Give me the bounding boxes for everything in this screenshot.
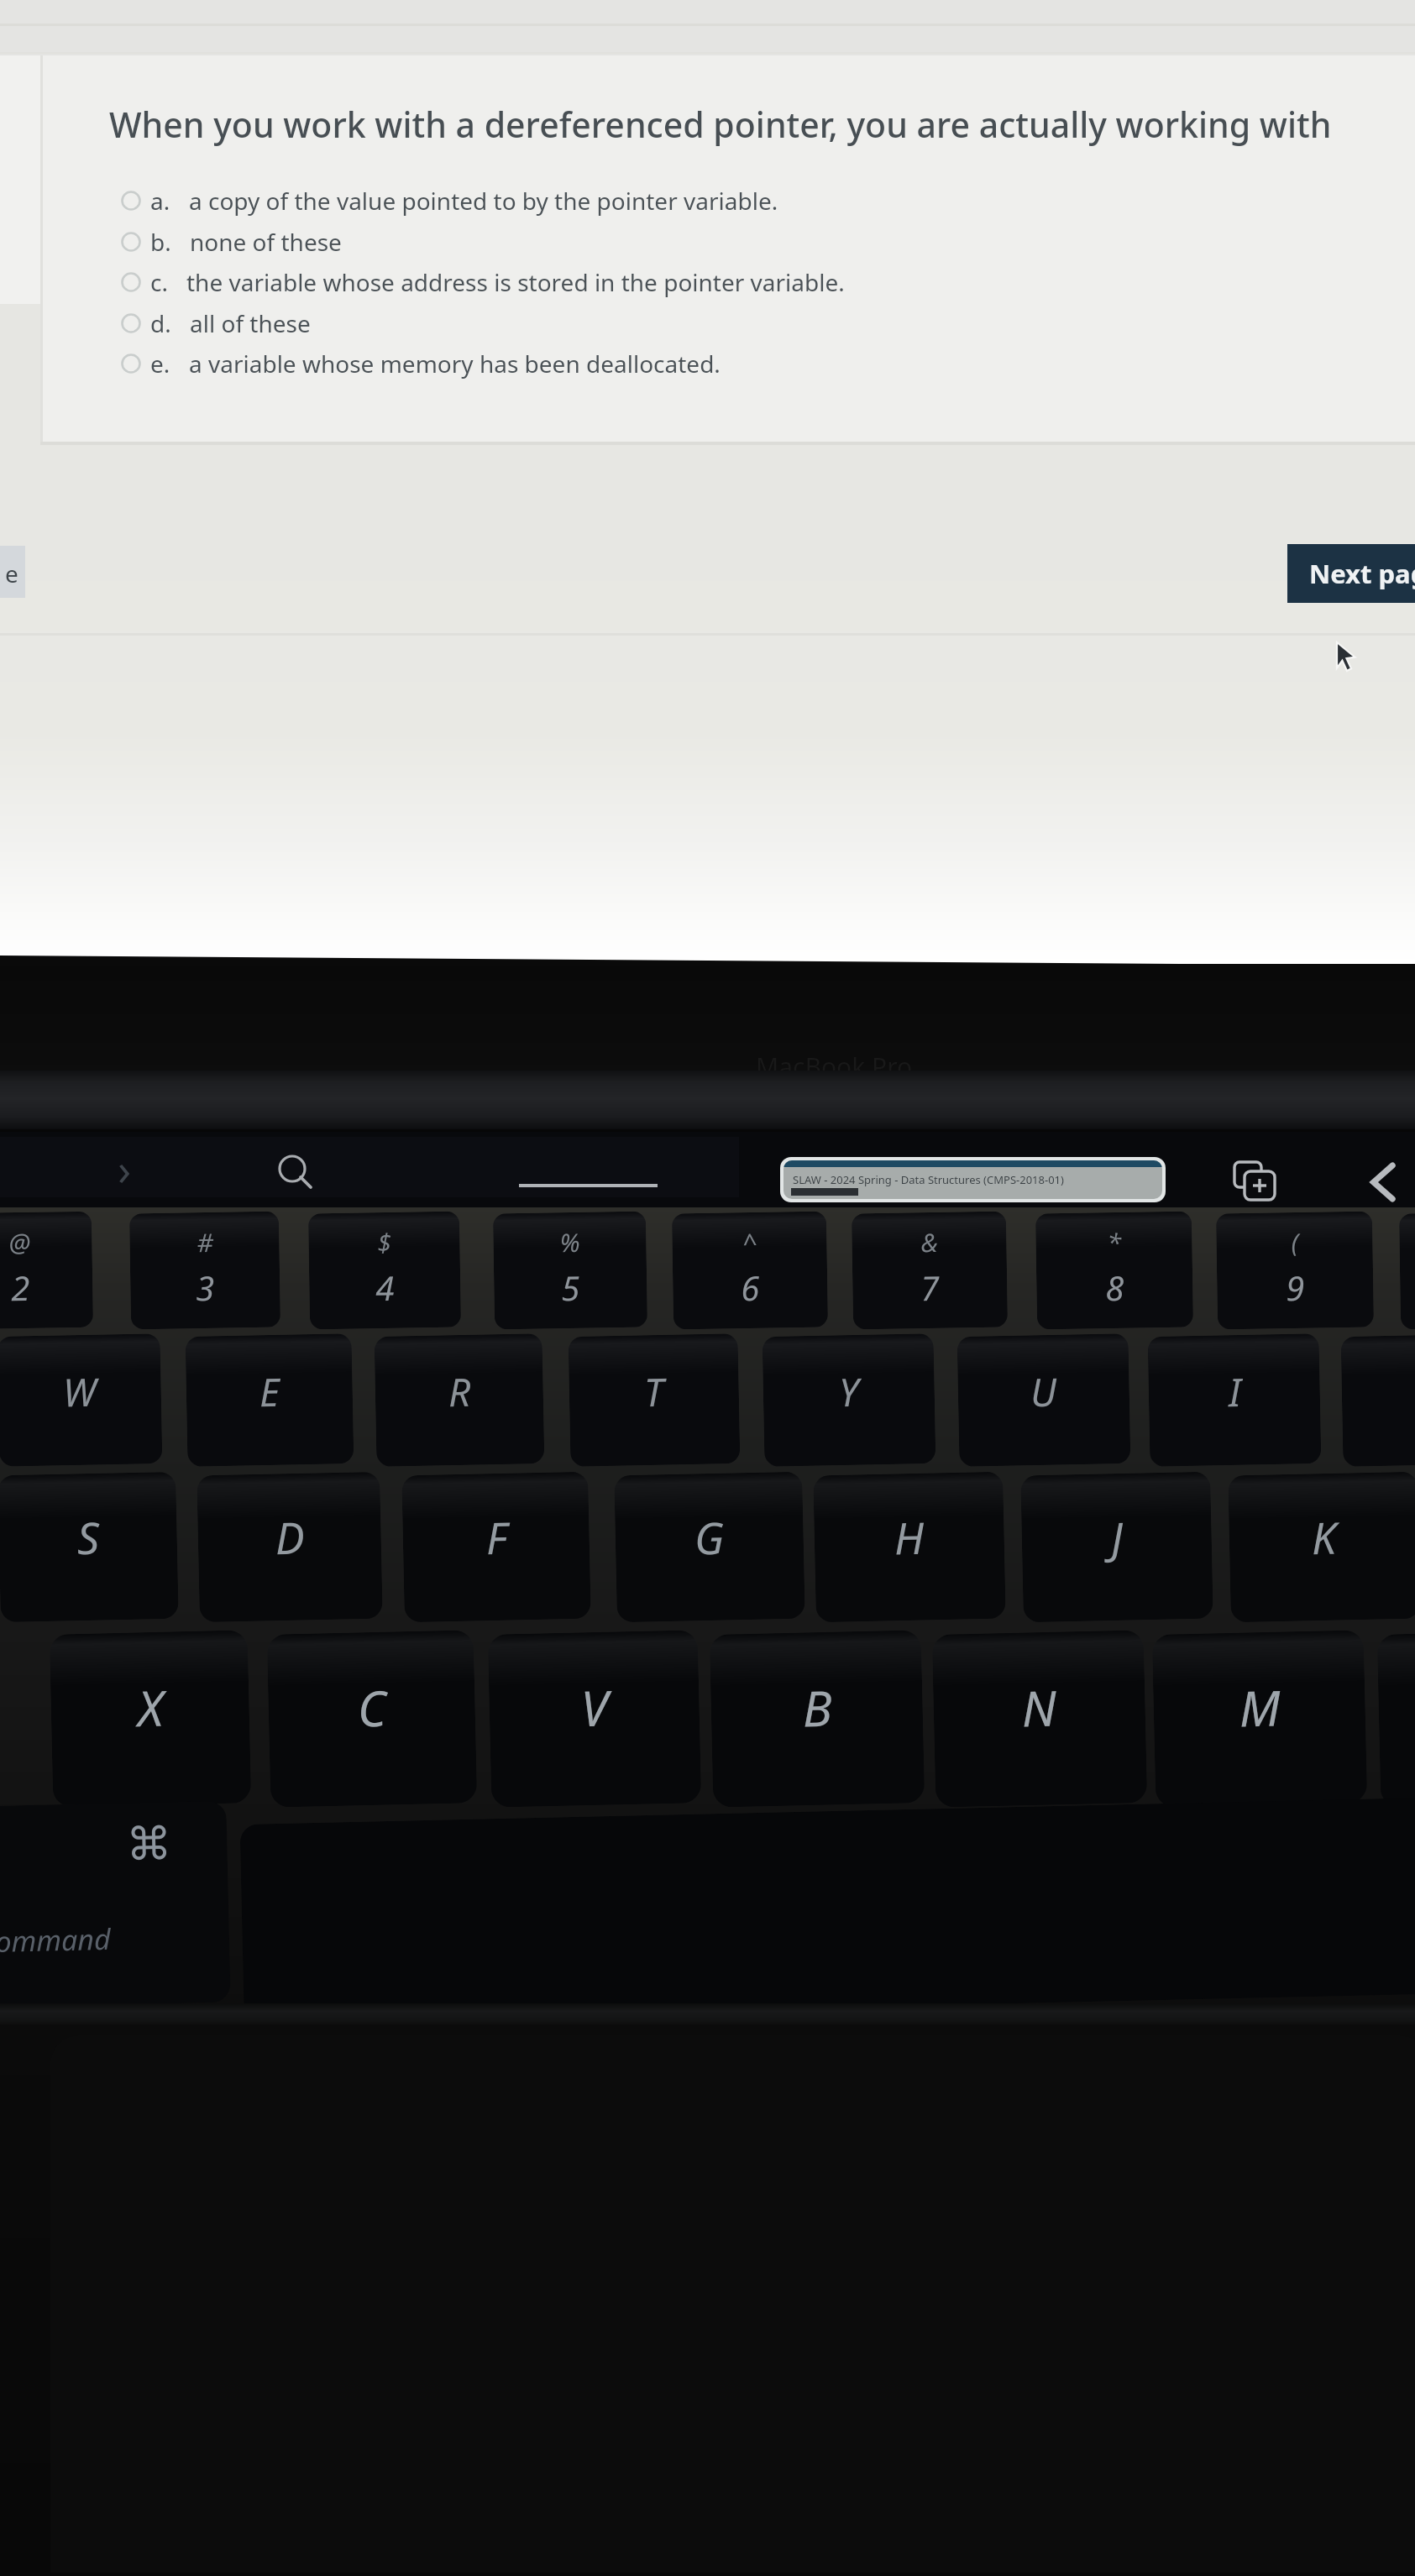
button[interactable]: Y	[762, 1333, 936, 1467]
staticText: command	[0, 1919, 111, 1961]
staticText: SLAW - 2024 Spring - Data Structures (CM…	[793, 1172, 1064, 1187]
button[interactable]: %	[493, 1211, 647, 1329]
staticText: Next page	[1309, 556, 1415, 591]
button[interactable]: O	[1341, 1333, 1415, 1467]
staticText: N	[1021, 1674, 1058, 1741]
staticText: c.	[150, 266, 168, 298]
button[interactable]: b.	[121, 224, 342, 259]
button[interactable]: I	[1148, 1333, 1321, 1467]
staticText: B	[802, 1674, 833, 1741]
staticText: Y	[838, 1365, 859, 1418]
staticText: a.	[150, 185, 170, 217]
staticText: a copy of the value pointed to by the po…	[189, 185, 778, 217]
button[interactable]: #	[129, 1211, 280, 1329]
button[interactable]: ⌘	[0, 1801, 231, 2011]
staticText: 9	[1286, 1264, 1306, 1310]
staticText: M	[1238, 1674, 1281, 1741]
button[interactable]: M	[1152, 1630, 1367, 1808]
staticText: the variable whose address is stored in …	[186, 266, 845, 298]
staticText: MacBook Pro	[756, 1050, 913, 1084]
button[interactable]: S	[0, 1472, 179, 1622]
staticText: 5	[561, 1264, 581, 1310]
staticText: S	[76, 1507, 100, 1567]
button[interactable]: H	[813, 1472, 1006, 1623]
staticText: J	[1110, 1507, 1124, 1567]
button[interactable]: F	[402, 1472, 591, 1622]
button[interactable]: ›	[118, 1139, 132, 1198]
staticText: K	[1311, 1507, 1337, 1567]
button[interactable]: d.	[121, 306, 311, 341]
button[interactable]: Next page	[1287, 544, 1415, 603]
button[interactable]: W	[0, 1334, 162, 1467]
staticText: I	[1228, 1365, 1242, 1418]
staticText: 6	[741, 1264, 761, 1310]
staticText: ^	[743, 1225, 758, 1260]
button[interactable]: Back	[1367, 1162, 1402, 1202]
staticText: ⌘	[126, 1817, 172, 1871]
button[interactable]: C	[267, 1630, 477, 1807]
staticText: @	[9, 1225, 31, 1260]
button[interactable]: D	[197, 1472, 383, 1622]
staticText: all of these	[190, 307, 311, 339]
staticText: a variable whose memory has been dealloc…	[189, 348, 721, 380]
button[interactable]: U	[957, 1333, 1131, 1467]
staticText: F	[485, 1507, 508, 1567]
button[interactable]: SLAW - 2024 Spring - Data Structures (CM…	[780, 1157, 1166, 1202]
button[interactable]: a.	[121, 183, 778, 218]
button[interactable]: *	[1035, 1211, 1193, 1329]
button[interactable]: $	[308, 1211, 461, 1329]
staticText: X	[137, 1674, 164, 1741]
staticText: R	[448, 1365, 471, 1418]
staticText: D	[275, 1507, 305, 1567]
staticText: &	[921, 1225, 939, 1260]
button[interactable]: G	[614, 1472, 805, 1623]
button[interactable]: V	[488, 1630, 701, 1808]
button[interactable]: (	[1216, 1211, 1374, 1329]
button[interactable]: K	[1228, 1472, 1415, 1623]
button[interactable]: R	[374, 1333, 545, 1467]
staticText: b.	[150, 226, 171, 258]
staticText: #	[197, 1225, 214, 1260]
button[interactable]: E	[185, 1333, 354, 1467]
staticText: $	[377, 1225, 392, 1260]
button[interactable]: ^	[672, 1211, 828, 1330]
staticText: 4	[375, 1264, 395, 1310]
button[interactable]: B	[709, 1630, 925, 1808]
button[interactable]: Search	[277, 1154, 322, 1199]
staticText: d.	[150, 307, 171, 339]
button[interactable]: J	[1020, 1472, 1213, 1623]
staticText: When you work with a dereferenced pointe…	[109, 101, 1332, 148]
staticText: 7	[920, 1264, 940, 1310]
staticText: none of these	[190, 226, 342, 258]
button[interactable]: @	[0, 1211, 93, 1329]
staticText: 3	[196, 1264, 216, 1310]
button[interactable]: X	[49, 1630, 251, 1807]
staticText: T	[643, 1365, 665, 1418]
staticText: %	[559, 1225, 580, 1260]
staticText: E	[259, 1365, 280, 1418]
button[interactable]: &	[851, 1211, 1008, 1330]
button[interactable]: New window	[1231, 1162, 1287, 1206]
staticText: G	[694, 1507, 725, 1567]
button[interactable]: N	[932, 1630, 1147, 1808]
button[interactable]: ,	[1377, 1630, 1415, 1808]
staticText: W	[62, 1365, 97, 1418]
button[interactable]: c.	[121, 264, 845, 300]
button[interactable]: )	[1399, 1211, 1415, 1329]
staticText: (	[1291, 1225, 1299, 1259]
staticText: 8	[1105, 1264, 1125, 1310]
button[interactable]: Space bar	[240, 1796, 1415, 2021]
staticText: e	[5, 558, 18, 589]
staticText: V	[580, 1674, 609, 1741]
staticText: *	[1107, 1225, 1122, 1260]
button[interactable]: e	[0, 546, 25, 598]
staticText: C	[357, 1674, 388, 1741]
staticText: 2	[11, 1264, 31, 1310]
button[interactable]: T	[568, 1333, 740, 1467]
staticText: U	[1030, 1365, 1058, 1418]
staticText: H	[894, 1507, 925, 1567]
staticText: e.	[150, 348, 170, 380]
button[interactable]: e.	[121, 346, 721, 381]
